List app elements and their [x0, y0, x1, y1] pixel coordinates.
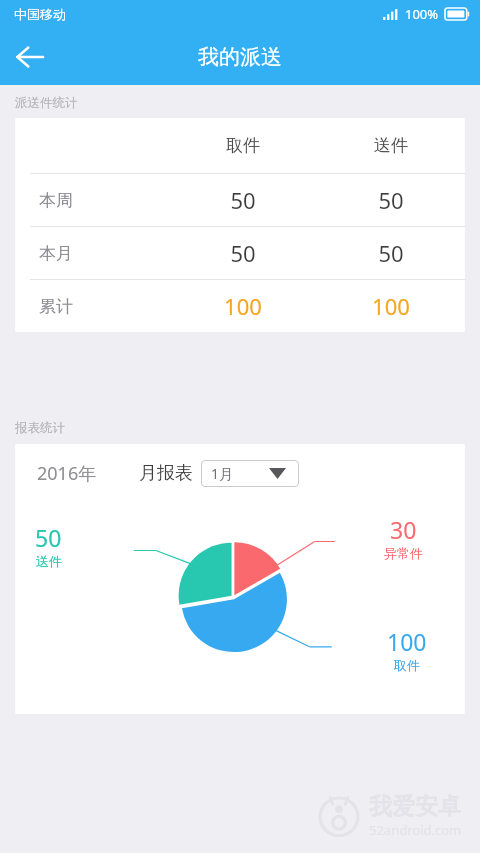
staticText: 30 — [390, 514, 417, 545]
staticText: 100 — [387, 626, 427, 657]
staticText: 100% — [405, 5, 439, 23]
staticText: 50 — [378, 238, 404, 268]
staticText: 2016年 — [37, 461, 97, 486]
staticText: 送件 — [374, 135, 408, 156]
button[interactable]: 1月 — [201, 460, 299, 487]
staticText: 1月 — [211, 464, 234, 483]
button[interactable]: 累计 — [15, 280, 465, 332]
staticText: 月报表 — [139, 462, 193, 485]
staticText: 100 — [372, 291, 410, 321]
staticText: 派送件统计 — [15, 95, 78, 111]
staticText: 52android.com — [369, 821, 462, 839]
staticText: 中国移动 — [14, 6, 66, 22]
staticText: 50 — [230, 238, 256, 268]
staticText: 累计 — [39, 296, 73, 317]
button[interactable]: 本月 — [15, 227, 465, 279]
staticText: 我的派送 — [198, 44, 282, 70]
staticText: 送件 — [36, 553, 62, 569]
staticText: 取件 — [226, 135, 260, 156]
staticText: 50 — [230, 185, 256, 215]
staticText: 报表统计 — [15, 420, 65, 436]
staticText: 异常件 — [384, 545, 423, 561]
staticText: 本月 — [39, 243, 73, 264]
staticText: 50 — [35, 522, 62, 553]
staticText: 50 — [378, 185, 404, 215]
staticText: 我爱安卓 — [369, 792, 461, 821]
staticText: 本周 — [39, 190, 73, 211]
button[interactable]: 本周 — [15, 174, 465, 226]
staticText: 取件 — [394, 657, 420, 673]
staticText: 100 — [224, 291, 262, 321]
button[interactable]: Back — [4, 31, 56, 83]
